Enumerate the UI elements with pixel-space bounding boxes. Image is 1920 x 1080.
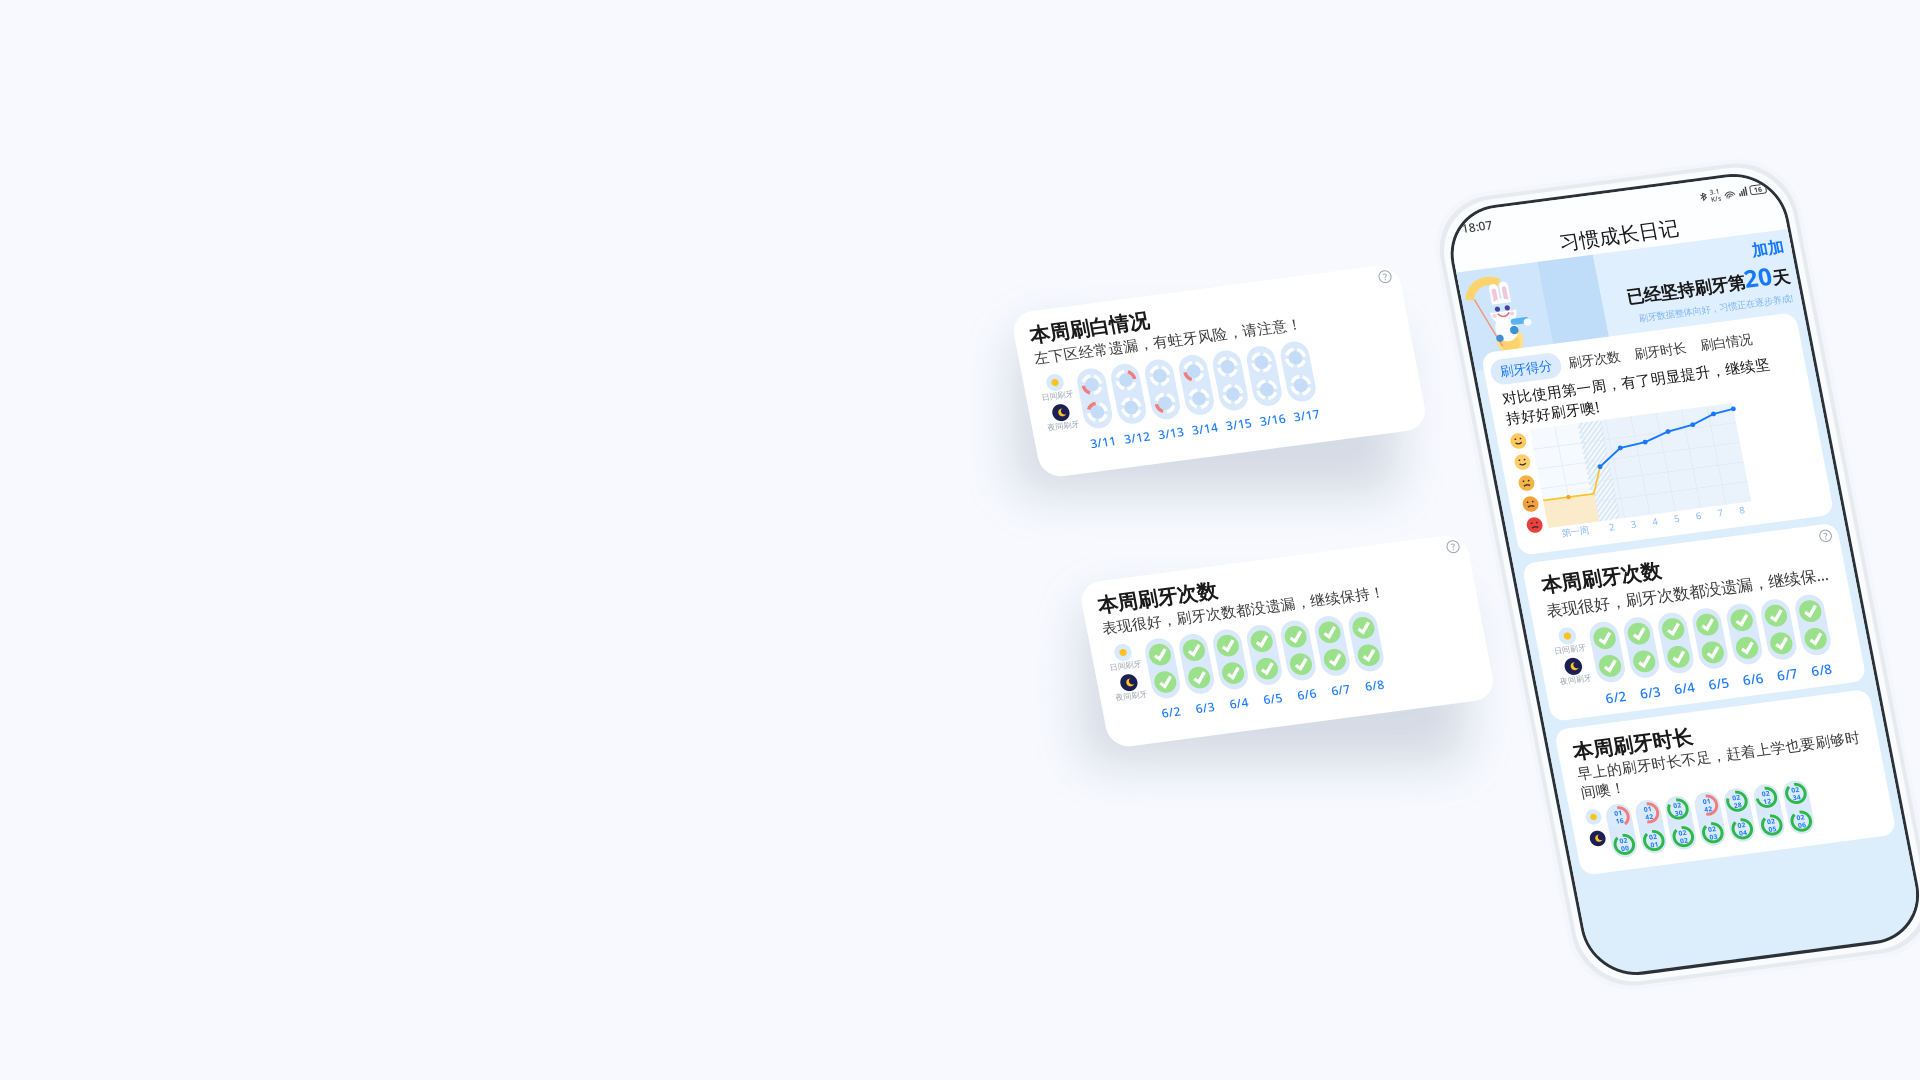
staticText: 3/17 — [1269, 445, 1295, 461]
button[interactable]: 返回 — [1448, 274, 1483, 298]
staticText: 02 — [1553, 858, 1561, 867]
staticText: 加加 — [1737, 283, 1769, 303]
staticText: 6/6 — [1272, 715, 1291, 731]
staticText: 03 — [1583, 866, 1591, 875]
staticText: 已经坚持刷牙第 — [1605, 313, 1724, 334]
staticText: 02 — [1613, 830, 1621, 838]
staticText: 6/8 — [1341, 715, 1360, 731]
staticText: 6/3 — [1542, 710, 1563, 727]
staticText: 34 — [1672, 837, 1680, 846]
staticText: 6/3 — [1170, 715, 1189, 731]
staticText: 6/4 — [1576, 710, 1597, 727]
staticText: K/s — [1706, 232, 1716, 241]
staticText: 42 — [1583, 837, 1591, 846]
staticText: 夜间刷牙 — [1025, 427, 1057, 437]
button[interactable]: 刷牙次数 — [1527, 368, 1594, 394]
staticText: 01 — [1583, 830, 1591, 838]
staticText: 3/15 — [1201, 445, 1227, 461]
staticText: 04 — [1613, 866, 1621, 875]
staticText: 8 — [1675, 543, 1680, 555]
staticText: 刷牙数据整体向好，习惯正在逐步养成! — [1613, 339, 1769, 352]
staticText: 3/14 — [1167, 445, 1193, 461]
staticText: 3/12 — [1098, 445, 1124, 461]
button[interactable]: 刷牙得分 — [1457, 368, 1527, 394]
staticText: 左下区经常遗漏，有蛀牙风险，请注意！ — [1025, 353, 1295, 371]
staticText: 天 — [1752, 313, 1769, 334]
staticText: 6/5 — [1611, 710, 1632, 727]
staticText: 表现很好，刷牙次数都没遗漏，继续保持！ — [1466, 613, 1760, 634]
staticText: 02 — [1553, 830, 1561, 838]
staticText: 2 — [1543, 543, 1548, 555]
staticText: 习惯成长日记 — [1549, 248, 1669, 273]
staticText: 6/6 — [1646, 710, 1667, 727]
staticText: 对比使用第一周，有了明显提升，继续坚 — [1463, 399, 1733, 417]
staticText: 本周刷牙时长 — [1465, 756, 1585, 781]
staticText: 12 — [1643, 837, 1651, 846]
staticText: 30 — [1553, 837, 1561, 846]
staticText: 夜间刷牙 — [1093, 697, 1125, 707]
staticText: 02 — [1643, 830, 1651, 838]
staticText: 刷牙时长 — [1601, 373, 1653, 389]
staticText: 刷白情况 — [1668, 373, 1720, 389]
staticText: 02 — [1672, 830, 1680, 838]
staticText: 早上的刷牙时长不足，赶着上学也要刷够时 — [1465, 782, 1750, 800]
staticText: 6/7 — [1307, 715, 1326, 731]
staticText: 刷牙次数 — [1535, 373, 1587, 389]
staticText: 20 — [1724, 304, 1752, 336]
staticText: 夜间刷牙 — [1466, 691, 1498, 701]
staticText: 3 — [1565, 543, 1570, 555]
staticText: 日间刷牙 — [1466, 660, 1498, 670]
staticText: 5 — [1609, 543, 1614, 555]
staticText: 6 — [1631, 543, 1636, 555]
staticText: 第一周 — [1496, 543, 1523, 555]
staticText: 4 — [1587, 543, 1592, 555]
staticText: 日间刷牙 — [1025, 396, 1057, 406]
staticText: 刷牙得分 — [1466, 373, 1518, 389]
staticText: 6/5 — [1238, 715, 1257, 731]
staticText: 28 — [1613, 837, 1621, 846]
staticText: 本周刷牙次数 — [1093, 596, 1213, 621]
staticText: 18:07 — [1456, 225, 1487, 241]
staticText: 持好好刷牙噢! — [1463, 418, 1557, 438]
staticText: 本周刷牙次数 — [1466, 587, 1586, 611]
staticText: 16 — [1751, 229, 1759, 238]
button[interactable]: 刷白情况 — [1661, 368, 1727, 394]
staticText: 05 — [1643, 866, 1651, 875]
staticText: 3/16 — [1235, 445, 1261, 461]
staticText: 日间刷牙 — [1093, 666, 1125, 676]
staticText: 表现很好，刷牙次数都没遗漏，继续保持！ — [1093, 623, 1378, 641]
staticText: 本周刷白情况 — [1025, 326, 1145, 351]
staticText: 6/7 — [1680, 710, 1701, 727]
button[interactable]: 刷牙时长 — [1594, 368, 1661, 394]
staticText: 02 — [1553, 866, 1561, 875]
button[interactable]: 说明 — [1745, 576, 1764, 596]
staticText: 7 — [1653, 543, 1658, 555]
staticText: 02 — [1672, 858, 1680, 867]
